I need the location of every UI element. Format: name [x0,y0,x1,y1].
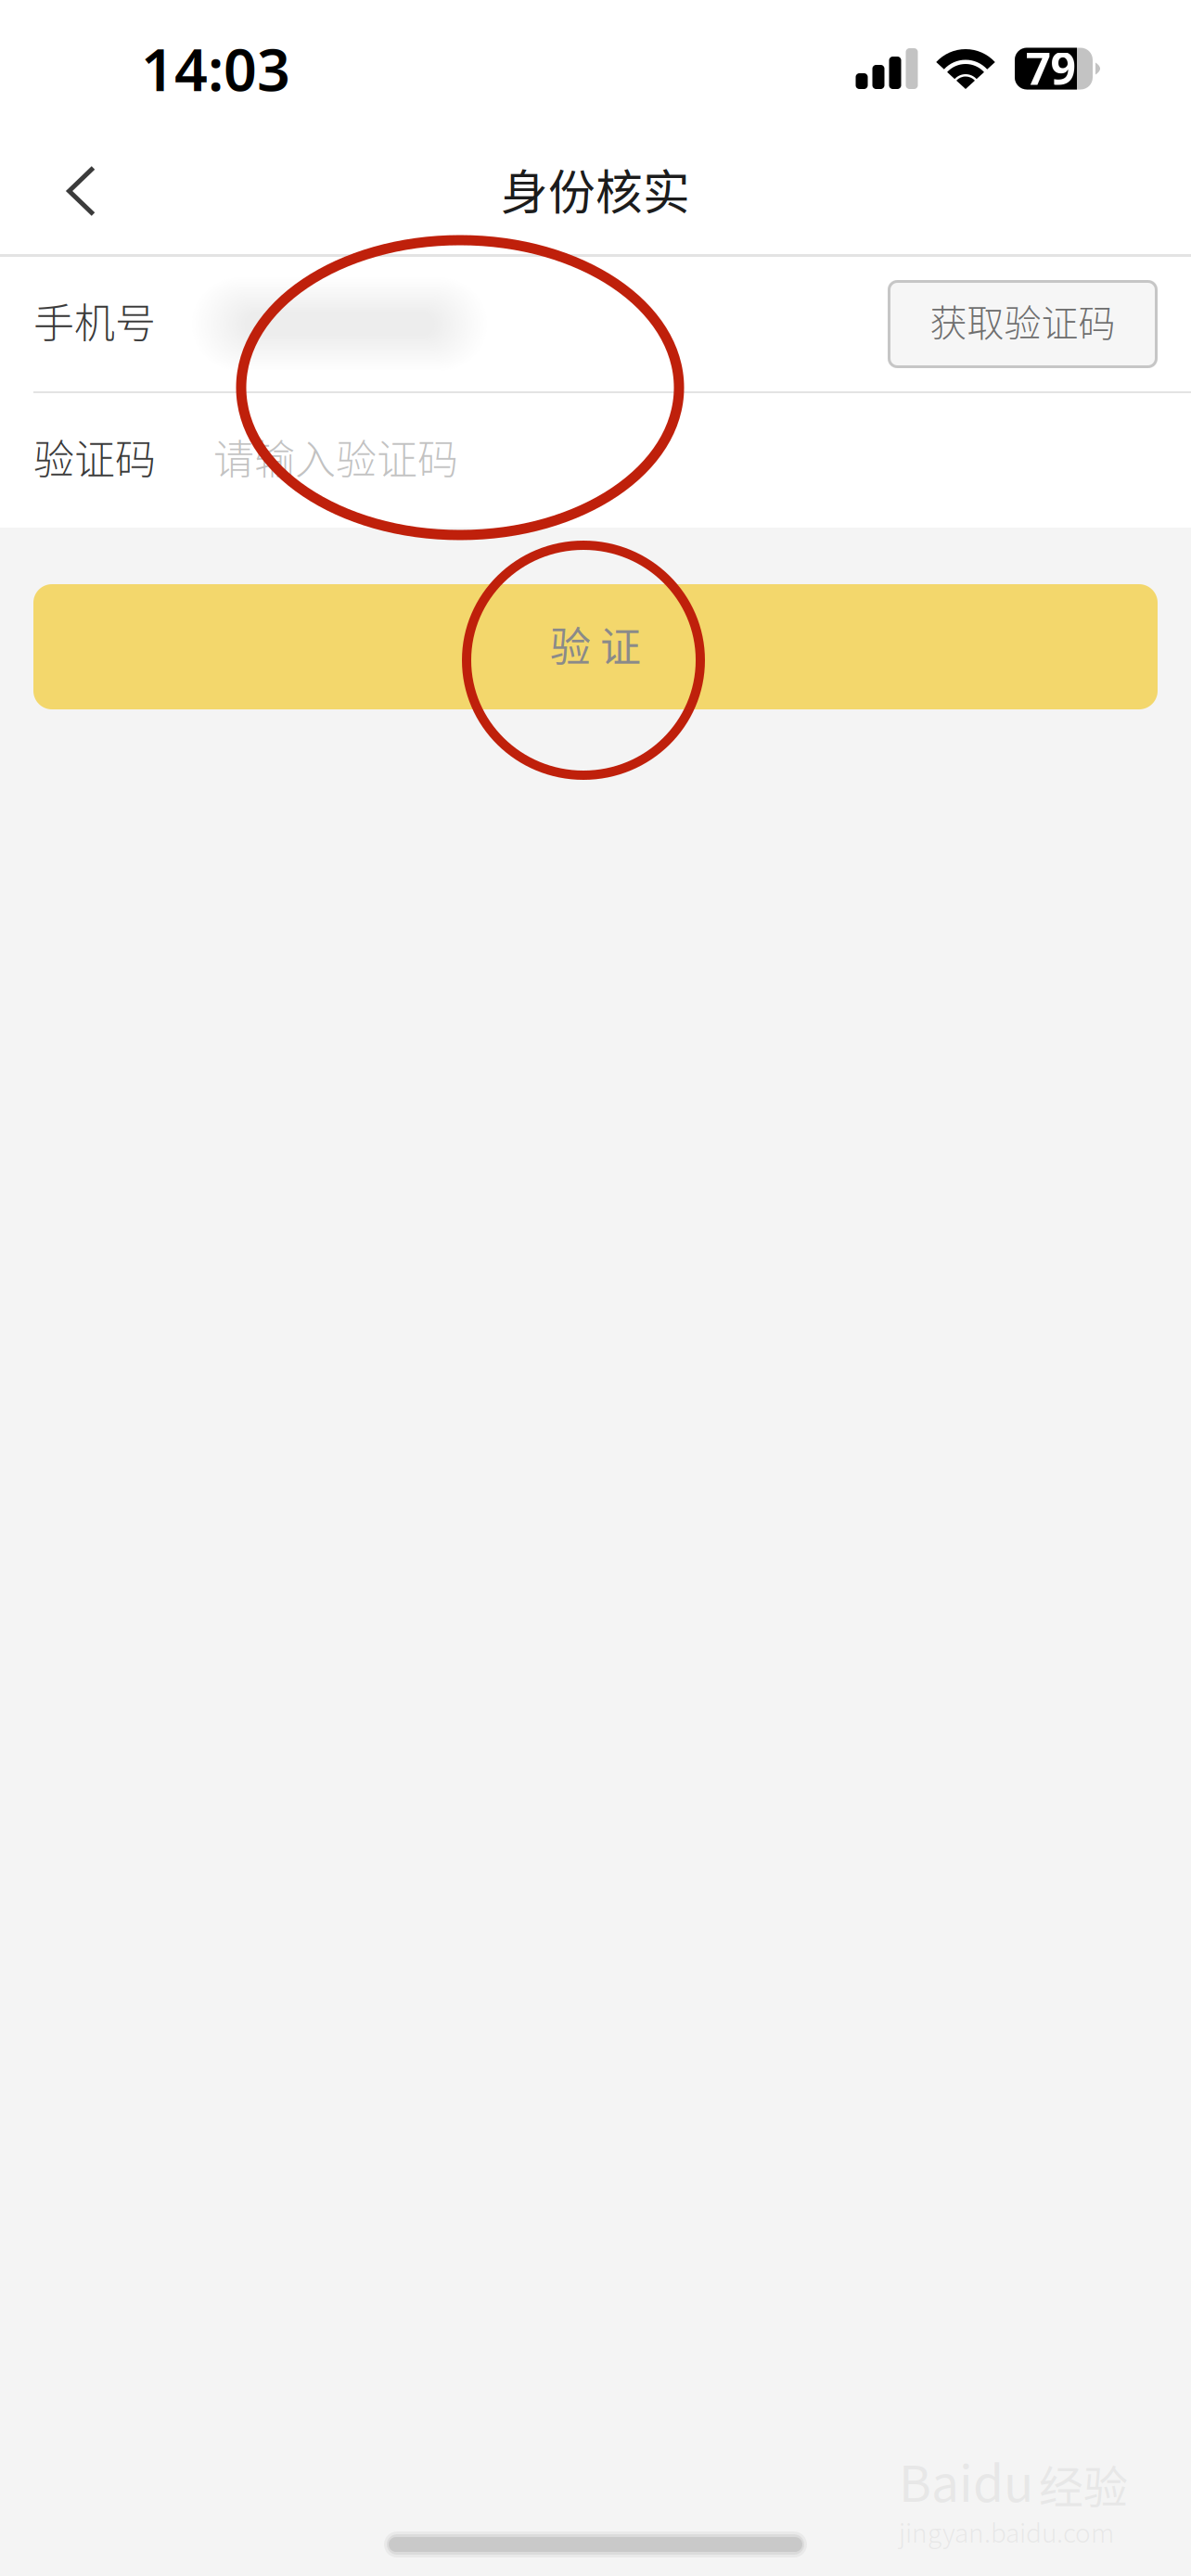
staticText: 获取验证码 [930,293,1115,347]
staticText: jingyan.baidu.com [899,2512,1114,2550]
staticText: 79 [1025,38,1076,97]
staticText: 14:03 [141,30,290,107]
staticText: 身份核实 [501,155,690,223]
staticText: 经验 [1039,2452,1128,2516]
staticText: 手机号 [33,291,156,350]
staticText: 请输入验证码 [213,427,458,486]
staticText: 验证码 [33,427,156,486]
button[interactable]: 返回 [0,138,96,253]
button[interactable]: 获取验证码 [888,280,1158,368]
staticText: 验 证 [550,614,641,673]
staticText: Baidu [899,2445,1033,2516]
button[interactable]: 验 证 [33,584,1158,709]
